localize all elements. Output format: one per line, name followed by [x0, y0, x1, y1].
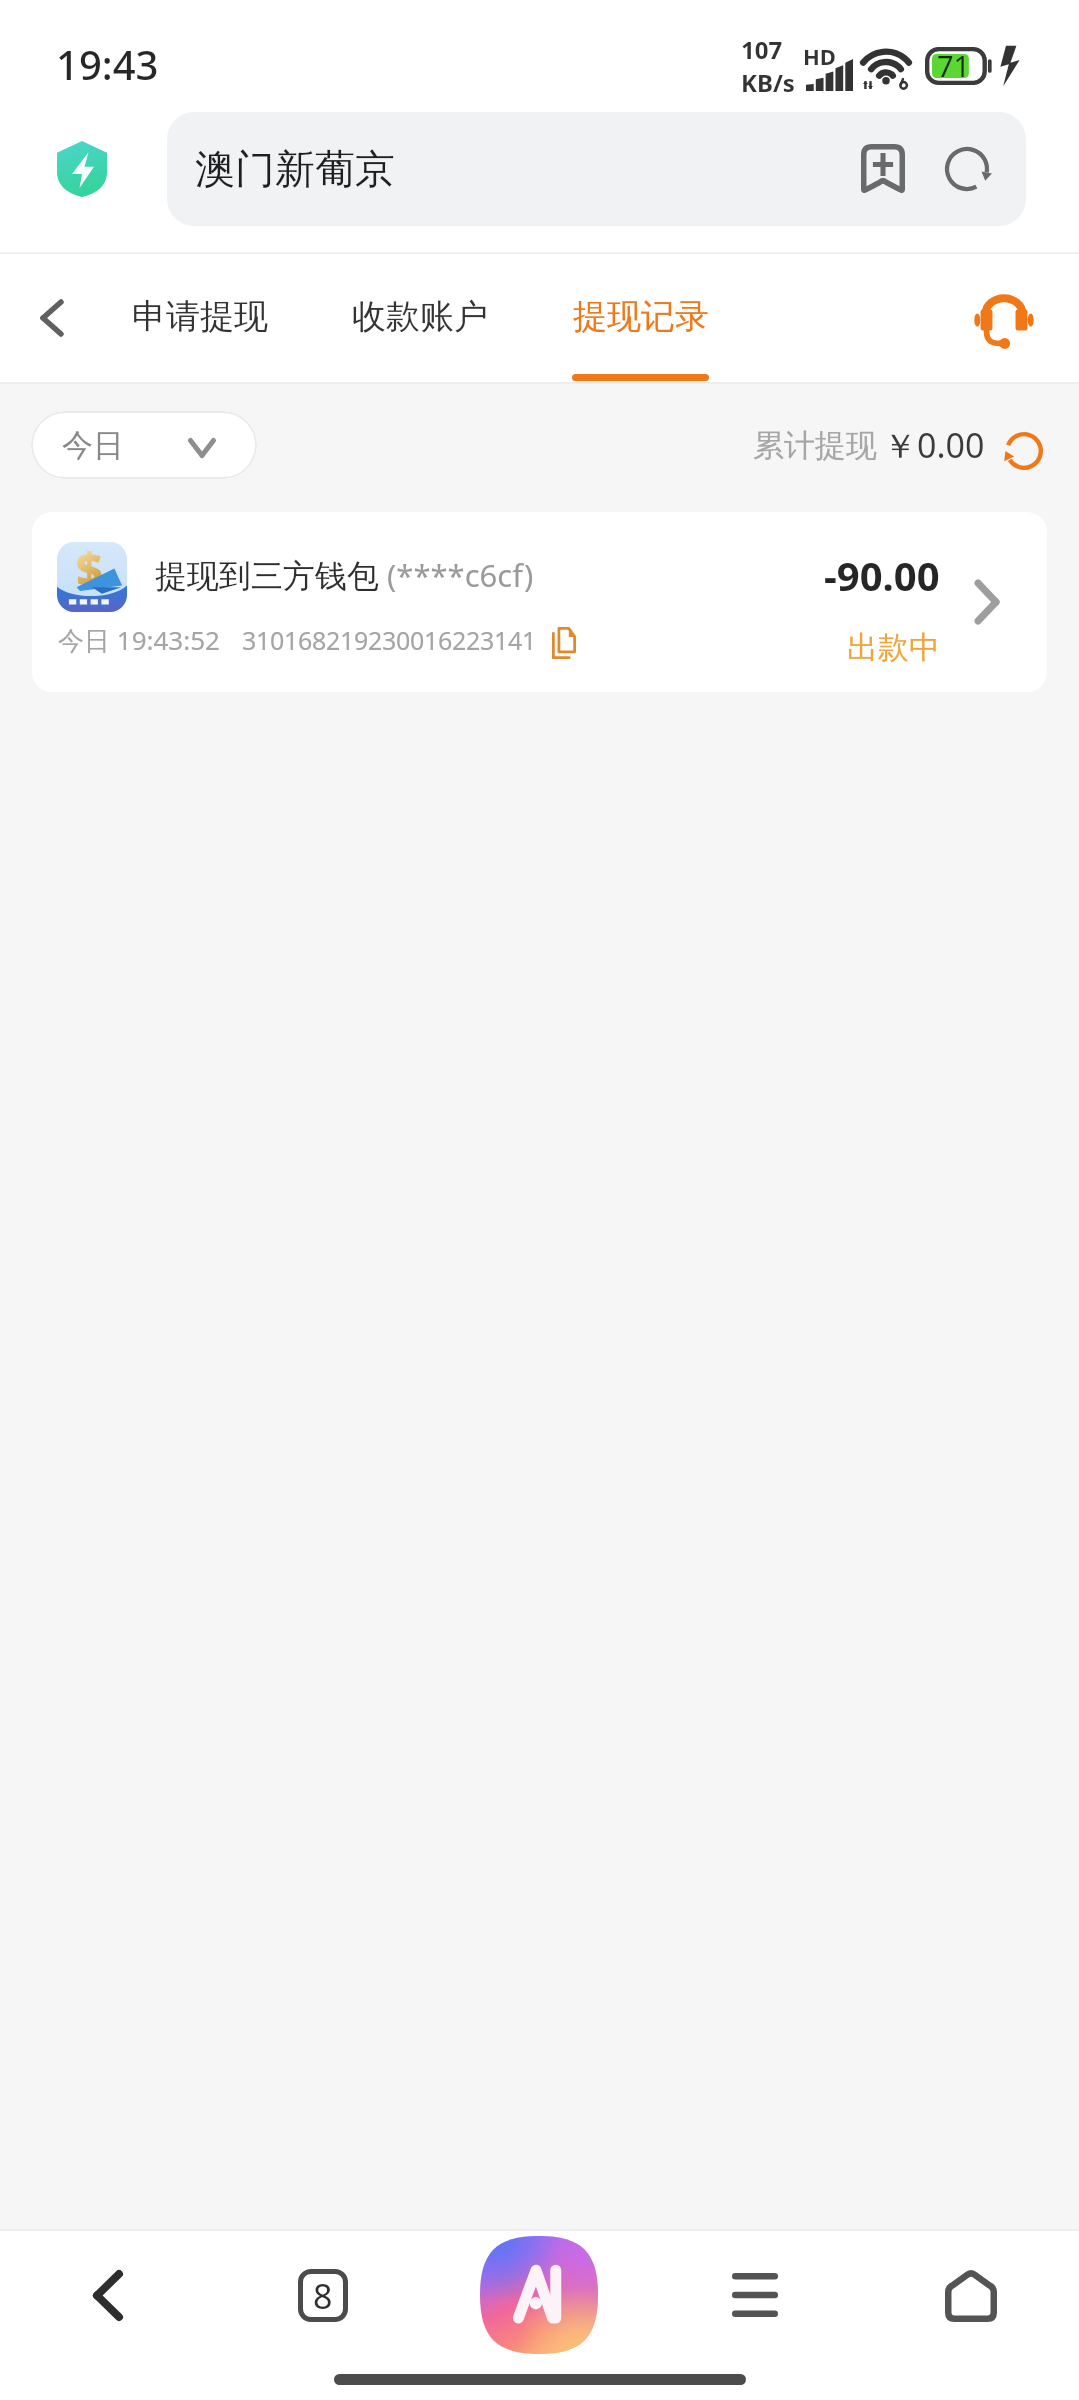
- button[interactable]: $: [32, 512, 1047, 692]
- staticText: ￥0.00: [883, 422, 985, 468]
- staticText: 累计提现: [753, 426, 877, 465]
- button[interactable]: Back: [4, 270, 100, 366]
- button[interactable]: Tabs: [215, 2231, 431, 2359]
- button[interactable]: Home: [863, 2231, 1079, 2359]
- staticText: 出款中: [847, 628, 940, 667]
- staticText: 今日: [62, 426, 124, 465]
- staticText: 今日 19:43:52: [58, 622, 220, 658]
- staticText: -90.00: [824, 548, 940, 602]
- button[interactable]: 收款账户: [342, 254, 498, 382]
- button[interactable]: 申请提现: [122, 254, 278, 382]
- button[interactable]: Copy order number: [547, 623, 581, 657]
- staticText: 澳门新葡京: [195, 144, 395, 194]
- staticText: 申请提现: [132, 295, 268, 338]
- staticText: 收款账户: [352, 295, 488, 338]
- button[interactable]: Refresh page: [932, 134, 1002, 204]
- button[interactable]: Back: [0, 2231, 215, 2359]
- button[interactable]: 今日: [31, 411, 257, 479]
- staticText: 310168219230016223141: [242, 623, 537, 657]
- staticText: KB/s: [741, 66, 795, 99]
- button[interactable]: Customer service: [949, 263, 1059, 373]
- staticText: 提现记录: [573, 295, 709, 338]
- button[interactable]: 澳门新葡京: [167, 112, 1026, 226]
- button[interactable]: Menu: [647, 2231, 863, 2359]
- staticText: 8: [313, 2273, 333, 2319]
- staticText: 71: [937, 46, 971, 84]
- button[interactable]: Add bookmark: [848, 134, 918, 204]
- staticText: 107: [741, 33, 783, 66]
- staticText: (****c6cf): [379, 554, 534, 596]
- button[interactable]: Security shield: [36, 123, 128, 215]
- staticText: 19:43: [56, 37, 159, 91]
- staticText: 提现到三方钱包: [155, 556, 379, 596]
- button[interactable]: 提现记录: [563, 254, 719, 382]
- staticText: $: [76, 542, 103, 600]
- button[interactable]: Refresh total: [997, 418, 1051, 472]
- button[interactable]: AI assistant: [431, 2231, 647, 2359]
- staticText: HD: [803, 41, 836, 71]
